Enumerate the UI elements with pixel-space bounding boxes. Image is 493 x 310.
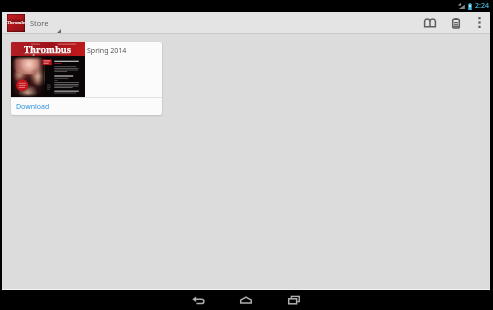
button[interactable]: More options — [469, 12, 490, 33]
button[interactable]: Store — [30, 18, 61, 28]
button[interactable]: Back — [175, 290, 221, 310]
button[interactable]: Home — [223, 290, 269, 310]
staticText: Thrombus — [24, 43, 72, 55]
staticText: 2:24 — [475, 1, 489, 11]
button[interactable]: Recent apps — [271, 290, 317, 310]
button[interactable]: Thrombus — [7, 14, 25, 32]
button[interactable]: Download — [11, 98, 162, 115]
staticText: Spring 2014 — [87, 46, 127, 56]
button[interactable]: Library — [417, 12, 443, 33]
staticText: Thrombus — [7, 20, 25, 26]
staticText: Download — [16, 102, 50, 112]
button[interactable]: Thrombus — [11, 42, 162, 115]
staticText: Store — [30, 18, 49, 28]
button[interactable]: Notes — [443, 12, 469, 33]
